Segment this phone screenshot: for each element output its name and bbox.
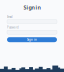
staticText: Email <box>7 15 13 19</box>
staticText: Sign in <box>23 4 40 11</box>
staticText: Sign in <box>27 38 37 41</box>
button[interactable]: Sign in <box>7 37 57 42</box>
staticText: Password <box>7 26 19 29</box>
